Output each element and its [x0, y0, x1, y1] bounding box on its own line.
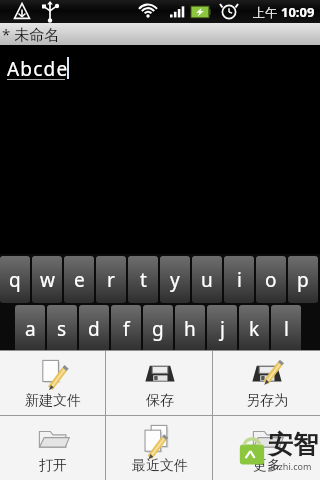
staticText: Abcde: [7, 56, 69, 82]
button[interactable]: u: [192, 256, 222, 303]
button[interactable]: 打开: [0, 416, 106, 480]
button[interactable]: 新建文件: [0, 351, 106, 415]
staticText: v: [151, 365, 161, 391]
staticText: anzhi.com: [268, 460, 312, 472]
staticText: 另存为: [246, 392, 288, 410]
staticText: a: [25, 316, 36, 342]
staticText: z: [56, 365, 65, 391]
staticText: y: [170, 267, 180, 293]
staticText: 新建文件: [25, 392, 81, 410]
button[interactable]: s: [47, 305, 77, 352]
staticText: s: [57, 316, 67, 342]
button[interactable]: y: [160, 256, 190, 303]
staticText: o: [265, 267, 277, 293]
staticText: k: [249, 316, 260, 342]
button[interactable]: k: [239, 305, 269, 352]
button[interactable]: d: [79, 305, 109, 352]
staticText: h: [184, 316, 196, 342]
button[interactable]: n: [205, 354, 235, 401]
button[interactable]: q: [0, 256, 30, 303]
button[interactable]: a: [15, 305, 45, 352]
button[interactable]: j: [207, 305, 237, 352]
staticText: j: [220, 316, 225, 342]
staticText: 10:09: [281, 3, 315, 21]
button[interactable]: 更多: [213, 416, 320, 480]
button[interactable]: r: [96, 256, 126, 303]
staticText: w: [40, 267, 55, 293]
button[interactable]: 另存为: [213, 351, 320, 415]
staticText: g: [152, 316, 164, 342]
staticText: u: [201, 267, 213, 293]
button[interactable]: v: [141, 354, 171, 401]
staticText: i: [237, 267, 242, 293]
staticText: 安智: [268, 429, 318, 460]
button[interactable]: w: [32, 256, 62, 303]
staticText: 更多: [253, 457, 281, 475]
staticText: d: [88, 316, 100, 342]
staticText: e: [74, 267, 85, 293]
staticText: 打开: [39, 457, 67, 475]
staticText: f: [123, 316, 130, 342]
button[interactable]: o: [256, 256, 286, 303]
button[interactable]: b: [173, 354, 203, 401]
button[interactable]: g: [143, 305, 173, 352]
staticText: q: [9, 267, 21, 293]
staticText: l: [284, 316, 289, 342]
button[interactable]: i: [224, 256, 254, 303]
button[interactable]: h: [175, 305, 205, 352]
staticText: 保存: [146, 392, 174, 410]
button[interactable]: e: [64, 256, 94, 303]
staticText: 上午: [253, 4, 281, 20]
button[interactable]: z: [45, 354, 75, 401]
button[interactable]: l: [271, 305, 301, 352]
staticText: r: [107, 267, 115, 293]
button[interactable]: m: [237, 354, 267, 401]
button[interactable]: 最近文件: [106, 416, 213, 480]
staticText: p: [297, 267, 309, 293]
button[interactable]: t: [128, 256, 158, 303]
button[interactable]: 保存: [106, 351, 213, 415]
button[interactable]: x: [77, 354, 107, 401]
button[interactable]: f: [111, 305, 141, 352]
staticText: 最近文件: [132, 457, 188, 475]
staticText: * 未命名: [2, 24, 60, 44]
button[interactable]: p: [288, 256, 318, 303]
staticText: t: [140, 267, 147, 293]
staticText: m: [243, 365, 261, 391]
